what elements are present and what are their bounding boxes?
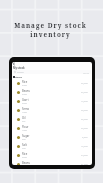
- staticText: Salt: [22, 143, 27, 147]
- staticText: Manage Dry stock inventory: [9, 21, 92, 39]
- button[interactable]: Search: [13, 70, 91, 74]
- staticText: 25L: [22, 120, 26, 123]
- staticText: 31,000: [81, 163, 88, 165]
- staticText: Garri: [22, 98, 29, 102]
- staticText: 2kg: [22, 147, 26, 150]
- staticText: Semo: [22, 107, 30, 111]
- button[interactable]: Sugar: [12, 133, 92, 142]
- button[interactable]: Salt: [12, 142, 92, 151]
- staticText: Beans: [22, 89, 30, 93]
- staticText: 15,200: [81, 145, 88, 148]
- staticText: Rice: [22, 152, 28, 156]
- staticText: Oil: [22, 116, 26, 120]
- button[interactable]: Flour: [12, 124, 92, 133]
- button[interactable]: Beans: [12, 160, 92, 165]
- button[interactable]: See all: [83, 72, 90, 75]
- staticText: Items: [15, 75, 22, 78]
- staticText: 25kg: [22, 102, 27, 105]
- staticText: 50kg: [22, 93, 27, 96]
- button[interactable]: Beans: [12, 88, 92, 97]
- staticText: Rice: [22, 80, 28, 84]
- staticText: 50kg: [22, 84, 27, 87]
- staticText: 9,800: [82, 136, 88, 139]
- staticText: Sugar: [22, 134, 30, 138]
- staticText: 40,000: [81, 127, 88, 130]
- staticText: 25kg: [22, 156, 27, 159]
- staticText: My stock: [13, 66, 25, 70]
- staticText: 35,000: [81, 118, 88, 121]
- staticText: 28,000: [81, 109, 88, 112]
- staticText: 10kg: [22, 111, 27, 114]
- button[interactable]: Garri: [12, 97, 92, 106]
- button[interactable]: Oil: [12, 115, 92, 124]
- staticText: 12,500: [81, 100, 88, 103]
- staticText: 24,000: [81, 154, 88, 157]
- staticText: 5kg: [22, 138, 26, 141]
- staticText: Flour: [22, 125, 29, 129]
- staticText: 62,000: [81, 91, 88, 94]
- button[interactable]: Semo: [12, 106, 92, 115]
- button[interactable]: Back: [13, 63, 15, 65]
- staticText: 10kg: [22, 129, 27, 132]
- staticText: 45,000: [81, 82, 88, 85]
- staticText: Search: [17, 71, 24, 74]
- staticText: Beans: [22, 161, 30, 165]
- button[interactable]: Rice: [12, 79, 92, 88]
- button[interactable]: Rice: [12, 151, 92, 160]
